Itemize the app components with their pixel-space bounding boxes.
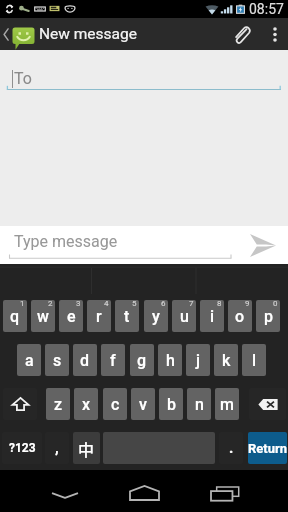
staticText: ?123 <box>9 441 36 455</box>
staticText: 5 <box>132 300 137 308</box>
button[interactable]: r <box>87 300 111 332</box>
staticText: 9 <box>245 300 250 308</box>
staticText: j <box>196 351 201 370</box>
staticText: h <box>166 351 175 370</box>
button[interactable]: e <box>59 300 83 332</box>
button[interactable]: l <box>242 344 266 376</box>
staticText: 6 <box>161 300 166 308</box>
button[interactable]: Attach <box>221 18 261 50</box>
staticText: k <box>222 351 231 370</box>
staticText: c <box>111 395 120 414</box>
button[interactable]: t <box>115 300 139 332</box>
staticText: l <box>252 351 257 370</box>
button[interactable]: ?123 <box>2 432 42 464</box>
button[interactable]: j <box>186 344 210 376</box>
button[interactable]: v <box>131 388 155 420</box>
button[interactable]: h <box>158 344 182 376</box>
button[interactable]: o <box>228 300 252 332</box>
staticText: 0 <box>273 300 278 308</box>
staticText: i <box>210 307 215 326</box>
staticText: Return <box>248 441 287 456</box>
other: Up <box>3 27 9 42</box>
staticText: w <box>37 307 49 326</box>
button[interactable]: Backspace <box>249 388 286 420</box>
button[interactable]: 中 <box>73 432 100 464</box>
staticText: 8 <box>217 300 222 308</box>
staticText: d <box>80 351 90 370</box>
staticText: b <box>167 395 176 414</box>
staticText: 7 <box>189 300 194 308</box>
button[interactable]: , <box>45 432 69 464</box>
button[interactable]: f <box>101 344 125 376</box>
button[interactable]: Hide keyboard <box>0 470 108 512</box>
button[interactable]: c <box>103 388 127 420</box>
staticText: 中 <box>78 437 95 460</box>
staticText: e <box>67 307 76 326</box>
button[interactable]: Shift <box>3 388 37 420</box>
button[interactable]: z <box>46 388 70 420</box>
staticText: u <box>180 307 189 326</box>
button[interactable]: k <box>214 344 238 376</box>
staticText: v <box>139 395 147 414</box>
staticText: t <box>124 307 130 326</box>
staticText: , <box>55 439 59 457</box>
staticText: To <box>14 69 32 88</box>
button[interactable]: s <box>45 344 69 376</box>
button[interactable]: y <box>144 300 168 332</box>
staticText: r <box>96 307 102 326</box>
staticText: o <box>235 307 245 326</box>
staticText: New message <box>39 25 137 43</box>
button[interactable]: p <box>256 300 280 332</box>
button[interactable]: d <box>73 344 97 376</box>
staticText: m <box>220 395 234 414</box>
button[interactable]: a <box>17 344 41 376</box>
button[interactable]: More options <box>261 18 288 50</box>
button[interactable]: Send <box>238 226 288 264</box>
staticText: q <box>10 307 20 326</box>
staticText: Type message <box>14 232 118 251</box>
button[interactable]: To <box>0 50 288 90</box>
button[interactable]: Recent apps <box>186 470 288 512</box>
staticText: 08:57 <box>249 1 284 17</box>
staticText: f <box>110 351 116 370</box>
staticText: x <box>82 395 91 414</box>
staticText: 2 <box>48 300 53 308</box>
staticText: s <box>53 351 62 370</box>
button[interactable]: u <box>172 300 196 332</box>
button[interactable]: w <box>31 300 55 332</box>
staticText: a <box>25 351 34 370</box>
staticText: n <box>195 395 204 414</box>
button[interactable]: n <box>187 388 211 420</box>
button[interactable]: x <box>74 388 98 420</box>
button[interactable]: i <box>200 300 224 332</box>
button[interactable]: g <box>130 344 154 376</box>
button[interactable]: Return <box>248 432 287 464</box>
staticText: 1 <box>20 300 25 308</box>
button[interactable]: . <box>219 432 243 464</box>
button[interactable]: m <box>215 388 239 420</box>
staticText: p <box>264 307 273 326</box>
button[interactable]: Home <box>108 470 186 512</box>
button[interactable]: b <box>159 388 183 420</box>
staticText: 3 <box>76 300 81 308</box>
staticText: 4 <box>104 300 109 308</box>
staticText: y <box>152 307 160 326</box>
button[interactable]: Type message <box>14 232 118 251</box>
staticText: z <box>54 395 63 414</box>
staticText: g <box>137 351 147 370</box>
button[interactable]: Up <box>0 18 288 50</box>
button[interactable]: q <box>3 300 27 332</box>
staticText: . <box>229 439 234 457</box>
